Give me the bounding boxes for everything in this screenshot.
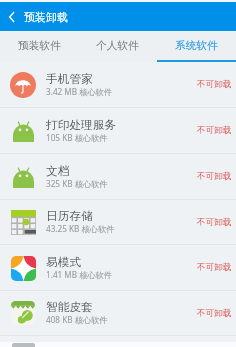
staticText: 3.42 MB 核心软件 [46, 86, 112, 97]
button[interactable]: Back [0, 2, 24, 31]
button[interactable]: 手机管家 [0, 62, 236, 108]
staticText: 325 KB 核心软件 [46, 178, 108, 189]
button[interactable]: 日历存储 [0, 200, 236, 245]
staticText: 个人软件 [96, 39, 139, 52]
staticText: 不可卸载 [197, 79, 232, 90]
staticText: 系统软件 [175, 39, 218, 52]
staticText: 43.25 KB 核心软件 [46, 223, 115, 234]
button[interactable] [0, 336, 236, 347]
staticText: 智能皮套 [46, 300, 93, 315]
staticText: 预装软件 [18, 39, 61, 52]
staticText: 105 KB 核心软件 [46, 132, 108, 143]
button[interactable]: 系统软件 [157, 31, 236, 62]
staticText: 1.41 MB 核心软件 [46, 269, 112, 280]
button[interactable]: 智能皮套 [0, 291, 236, 336]
staticText: 不可卸载 [197, 125, 232, 136]
staticText: 不可卸载 [197, 171, 232, 182]
button[interactable]: 个人软件 [78, 31, 157, 62]
button[interactable]: 预装软件 [0, 31, 78, 62]
staticText: 不可卸载 [197, 262, 232, 273]
staticText: 易模式 [46, 255, 82, 270]
staticText: 408 KB 核心软件 [46, 314, 108, 325]
staticText: 手机管家 [46, 72, 93, 87]
staticText: 日历存储 [46, 209, 93, 224]
staticText: 不可卸载 [197, 217, 232, 228]
button[interactable]: 文档 [0, 154, 236, 200]
staticText: 不可卸载 [197, 308, 232, 319]
staticText: 打印处理服务 [46, 118, 117, 133]
staticText: 预装卸载 [24, 10, 68, 24]
staticText: 文档 [46, 164, 70, 179]
button[interactable]: 易模式 [0, 245, 236, 291]
button[interactable]: 打印处理服务 [0, 108, 236, 154]
